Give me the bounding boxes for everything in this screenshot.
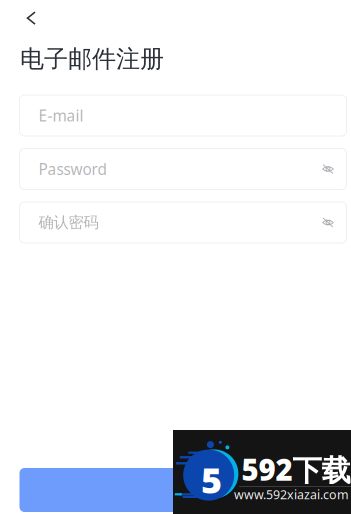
button[interactable]: Back [0, 0, 60, 36]
staticText: 确认密码 [38, 213, 98, 232]
staticText: 592下载 [241, 450, 350, 489]
staticText: Password [38, 159, 106, 179]
staticText: E-mail [38, 105, 83, 126]
staticText: 5 [201, 455, 222, 504]
button[interactable]: Register [19, 468, 346, 512]
staticText: 电子邮件注册 [20, 44, 164, 74]
staticText: www.592xiazai.com [234, 486, 349, 503]
